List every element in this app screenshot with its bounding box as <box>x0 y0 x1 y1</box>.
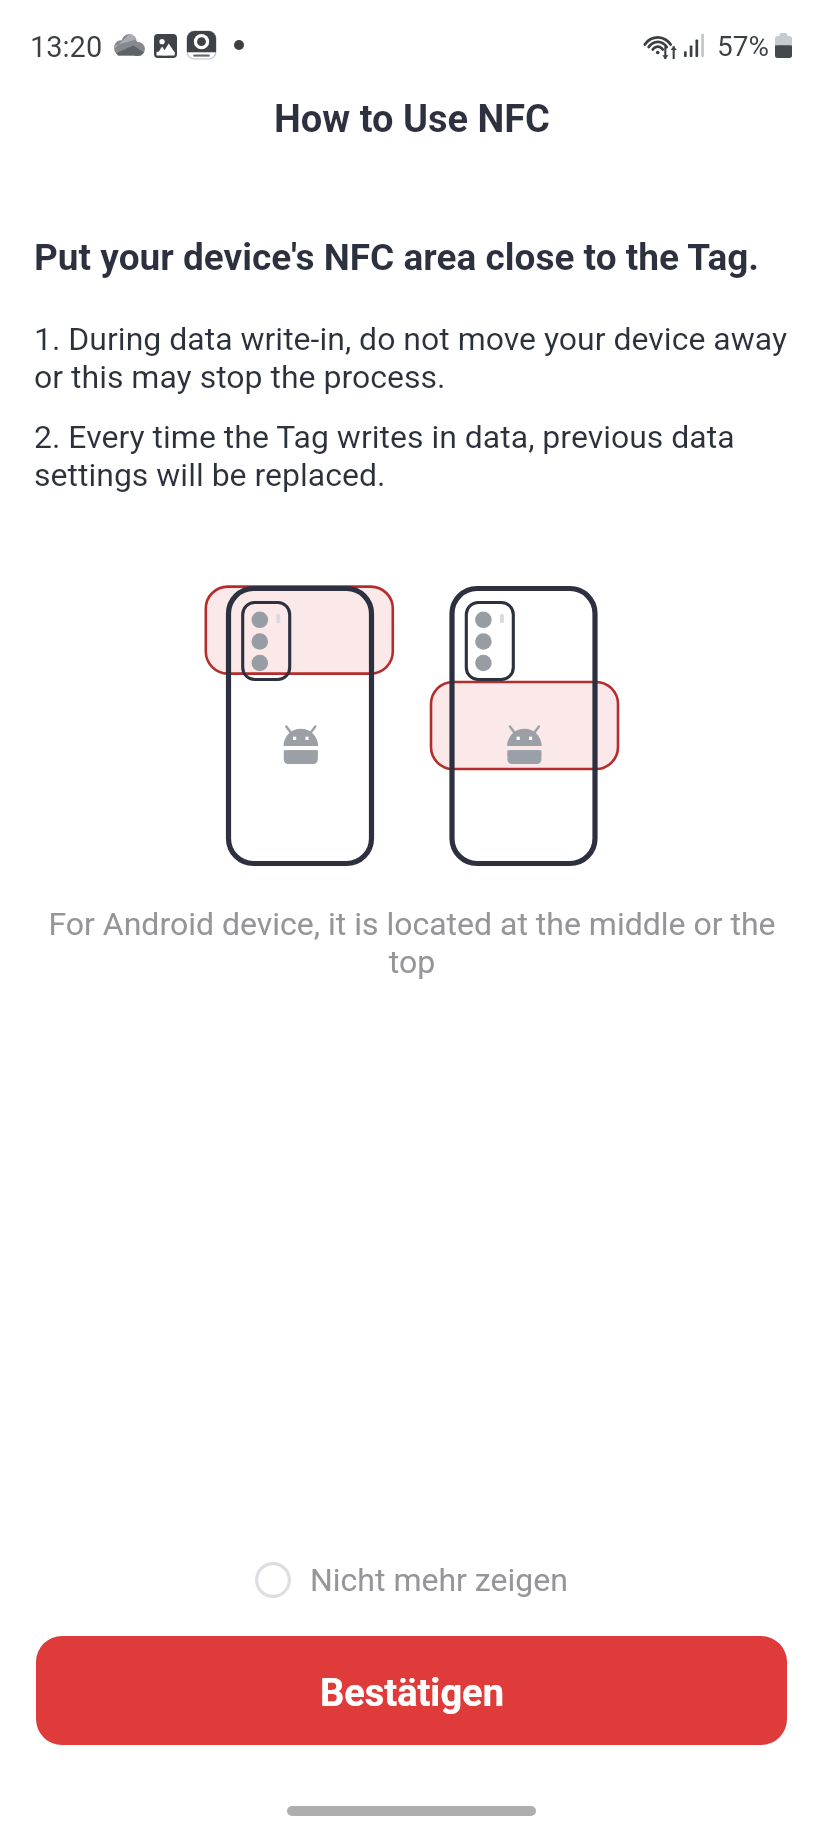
button[interactable]: Nicht mehr zeigen <box>245 1553 578 1607</box>
staticText: Nicht mehr zeigen <box>310 1561 568 1599</box>
staticText: 2. Every time the Tag writes in data, pr… <box>34 418 768 494</box>
staticText: For Android device, it is located at the… <box>47 905 777 981</box>
staticText: Bestätigen <box>320 1671 504 1716</box>
staticText: Put your device's NFC area close to the … <box>34 236 823 279</box>
staticText: 1. During data write-in, do not move you… <box>34 320 798 396</box>
staticText: 13:20 <box>30 30 103 64</box>
staticText: How to Use NFC <box>274 97 550 142</box>
staticText: 57% <box>717 30 769 63</box>
button[interactable]: Bestätigen <box>36 1636 787 1745</box>
